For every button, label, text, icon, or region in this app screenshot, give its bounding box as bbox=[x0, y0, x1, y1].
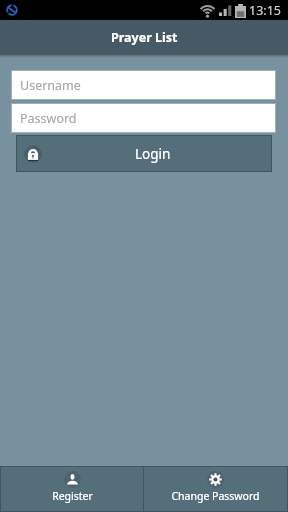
staticText: Change Password bbox=[171, 489, 260, 503]
staticText: Username bbox=[20, 77, 81, 94]
button[interactable]: Login bbox=[17, 136, 271, 171]
staticText: Register bbox=[52, 489, 93, 503]
other: Change Password bbox=[207, 471, 224, 488]
staticText: Password bbox=[20, 110, 77, 127]
staticText: 13:15 bbox=[249, 2, 281, 19]
staticText: Prayer List bbox=[111, 29, 178, 46]
other: Register bbox=[64, 471, 81, 488]
button[interactable]: Register bbox=[1, 467, 143, 511]
staticText: Login bbox=[135, 145, 171, 163]
button[interactable]: Username bbox=[12, 71, 275, 99]
button[interactable]: Change Password bbox=[144, 467, 287, 511]
button[interactable]: Password bbox=[12, 104, 275, 132]
